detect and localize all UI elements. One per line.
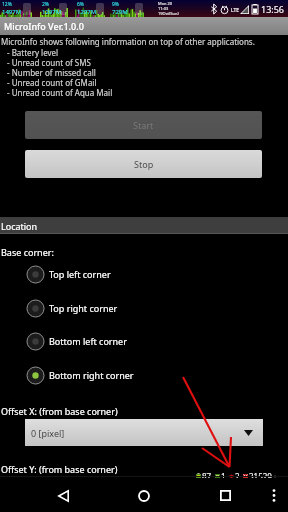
staticText: 1297M [42,8,62,16]
staticText: Start [133,119,154,131]
staticText: Base corner: [1,246,54,258]
staticText: MicroInfo Ver.1.0.0 [4,20,84,32]
staticText: Bottom left corner [49,335,127,347]
button[interactable]: Back [45,478,81,512]
staticText: - Unread count of SMS [7,57,91,68]
staticText: LTE [231,7,240,14]
staticText: Bottom right corner [49,369,134,381]
staticText: - Battery level [7,47,59,58]
staticText: 2% [42,1,50,8]
staticText: 9% [112,1,120,8]
staticText: Offset Y: (from base corner) [1,463,118,475]
staticText: Location [1,220,38,232]
staticText: - Unread count of GMail [7,77,97,88]
staticText: Stop [134,158,154,170]
button[interactable]: More options [262,478,286,512]
staticText: MicroInfo shows following information on… [1,36,255,47]
staticText: 1 [221,471,226,481]
button[interactable]: Bottom left corner [0,324,288,358]
staticText: 1497M [2,8,22,16]
staticText: 2 [235,471,240,481]
staticText: 31529 [249,471,272,481]
staticText: 87 [202,471,212,481]
staticText: 6% [77,1,85,8]
button[interactable]: 0 [pixel] [25,419,263,446]
staticText: - Unread count of Aqua Mail [7,87,113,98]
button[interactable]: Top left corner [0,257,288,291]
staticText: 0 [pixel] [31,427,65,439]
staticText: Mon 20 [158,1,173,6]
staticText: Offset X: (from base corner) [1,405,118,417]
staticText: 11:03 [158,6,169,11]
button[interactable]: Recent apps [207,478,243,512]
staticText: 729M [112,8,128,16]
button[interactable]: Bottom right corner [0,358,288,392]
button[interactable]: Stop [25,150,262,178]
staticText: Top left corner [49,268,111,280]
staticText: 1297M [77,8,97,16]
staticText: 13:56 [261,3,285,15]
button[interactable]: Top right corner [0,291,288,325]
staticText: - Number of missed call [7,67,96,78]
staticText: Top right corner [49,302,118,314]
button[interactable]: Home [126,478,162,512]
staticText: 12% [2,1,12,8]
staticText: 19Oct(Sun) [158,11,179,16]
